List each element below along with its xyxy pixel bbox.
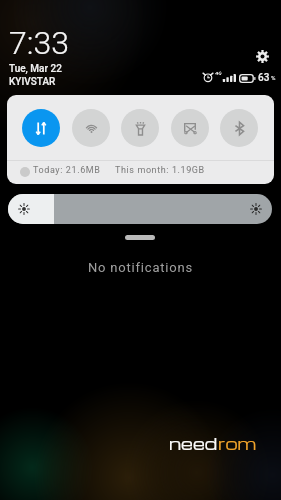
staticText: rom (218, 432, 257, 454)
staticText: KYIVSTAR (9, 76, 56, 88)
staticText: Today: 21.6MB (33, 165, 101, 176)
staticText: This month: 1.19GB (115, 165, 205, 176)
button[interactable]: Bluetooth (220, 109, 258, 147)
button[interactable]: Mobile data (22, 109, 60, 147)
button[interactable]: Flashlight (121, 109, 159, 147)
button[interactable]: Brightness (8, 194, 272, 224)
staticText: Tue, Mar 22 (9, 63, 62, 75)
button[interactable]: Settings (252, 46, 273, 67)
staticText: 63 (258, 72, 270, 84)
button[interactable]: Smart capture (171, 109, 209, 147)
staticText: No notifications (88, 260, 193, 275)
button[interactable]: Wi-Fi (72, 109, 110, 147)
staticText: need (169, 432, 218, 454)
staticText: 7:33 (9, 24, 69, 62)
staticText: % (271, 74, 276, 81)
